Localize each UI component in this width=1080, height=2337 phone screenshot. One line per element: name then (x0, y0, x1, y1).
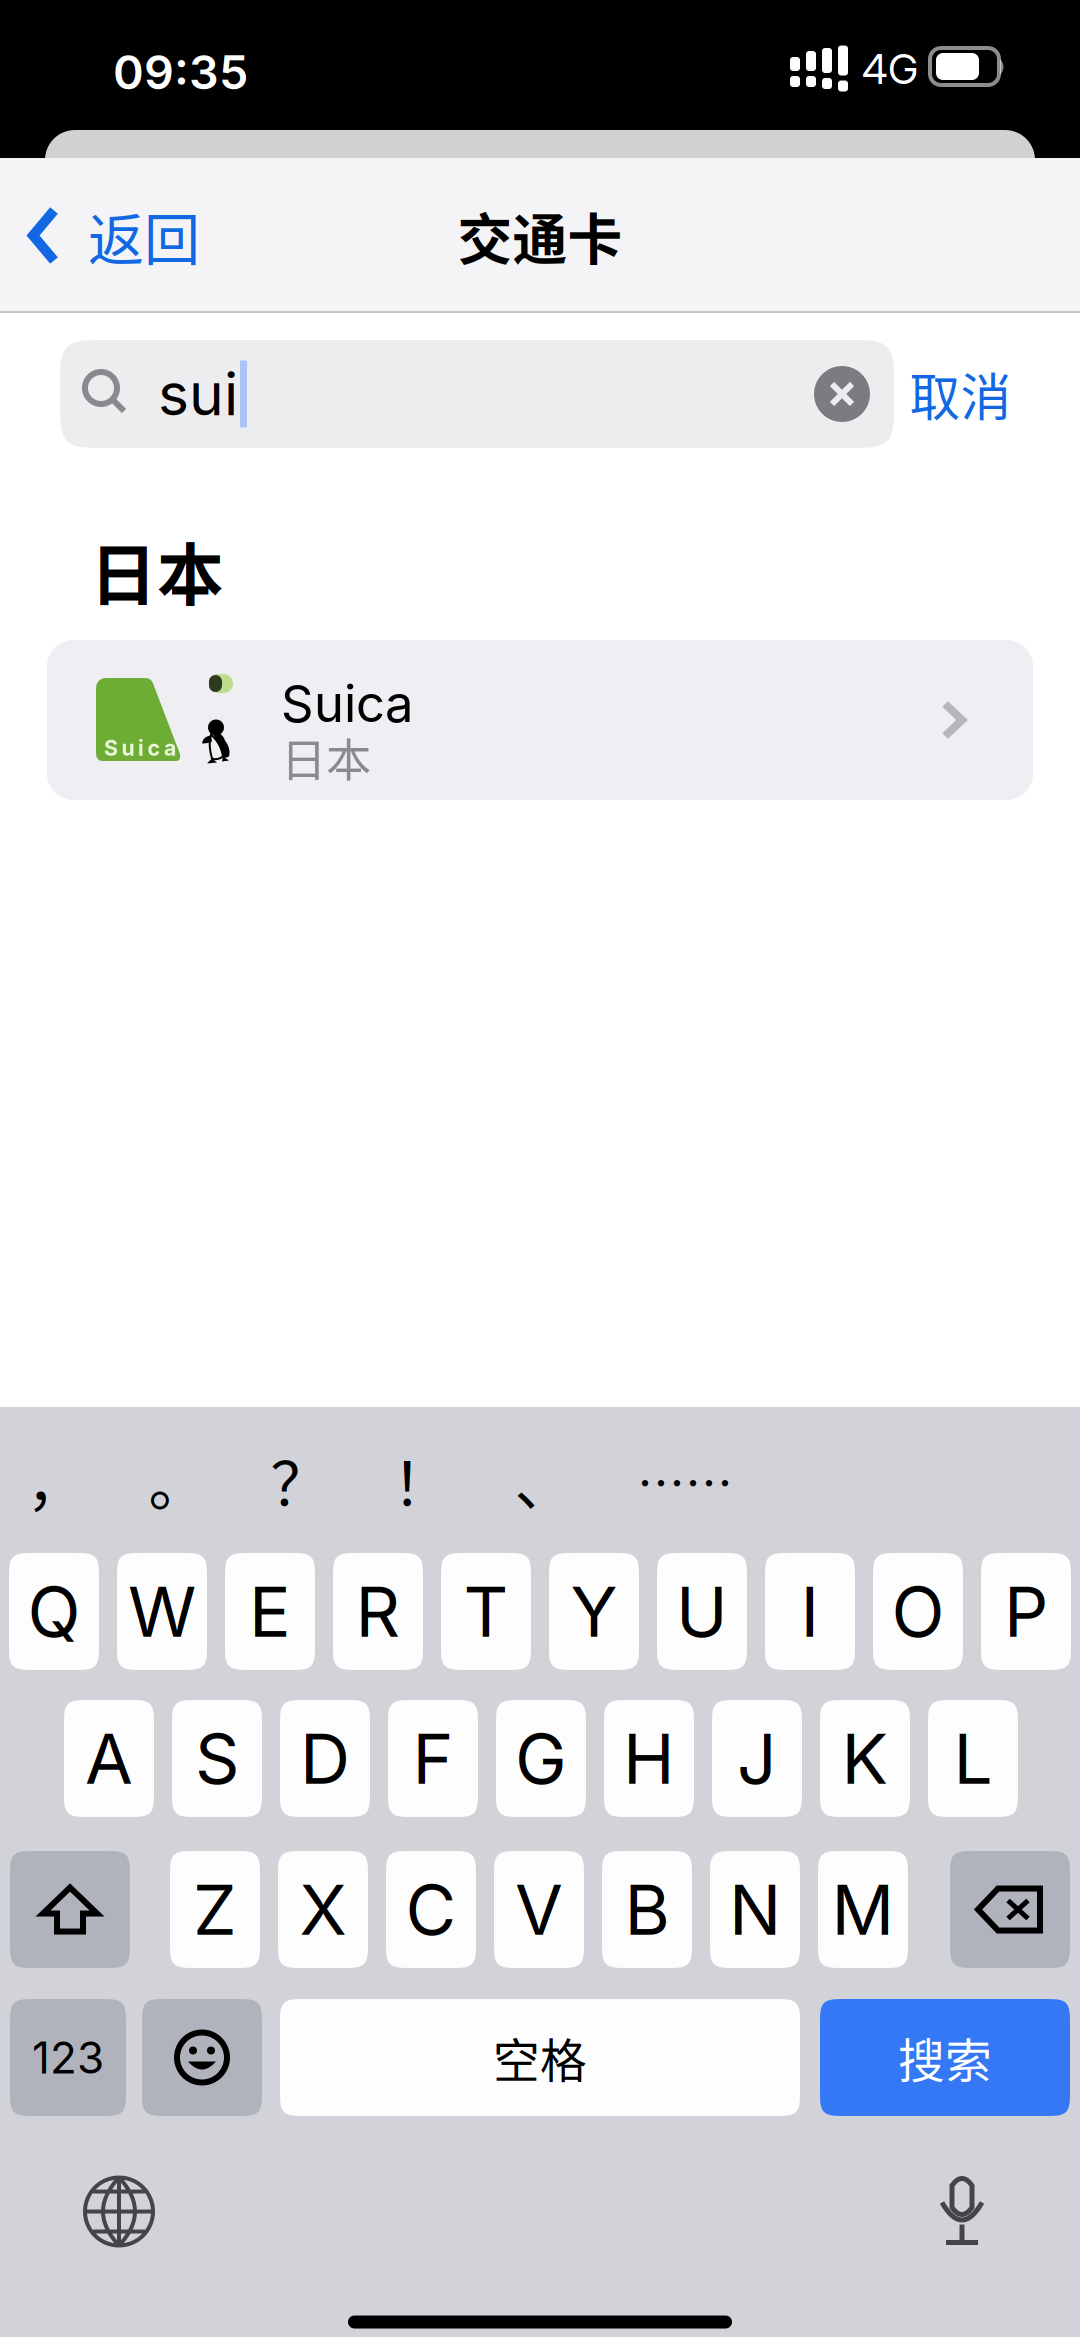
button[interactable]: G (496, 1700, 586, 1817)
staticText: H (623, 1717, 675, 1800)
button[interactable]: 、 (483, 1407, 605, 1553)
button[interactable]: …… (605, 1407, 765, 1553)
button[interactable]: 取消 (879, 340, 1042, 448)
staticText: …… (637, 1445, 733, 1515)
staticText: 取消 (909, 357, 1011, 431)
button[interactable]: X (278, 1851, 368, 1968)
staticText: X (299, 1868, 346, 1951)
button[interactable]: N (710, 1851, 800, 1968)
staticText: 。 (148, 1437, 207, 1522)
button[interactable]: D (280, 1700, 370, 1817)
button[interactable]: Next keyboard (82, 2174, 156, 2248)
button[interactable]: 。 (117, 1407, 239, 1553)
staticText: 123 (32, 2031, 104, 2084)
staticText: R (355, 1570, 400, 1653)
button[interactable]: O (873, 1553, 963, 1670)
button[interactable]: C (386, 1851, 476, 1968)
staticText: 日本 (90, 522, 224, 619)
button[interactable]: Shift (10, 1851, 130, 1968)
staticText: F (412, 1717, 453, 1800)
button[interactable]: S (172, 1700, 262, 1817)
staticText: 搜索 (898, 2024, 992, 2091)
staticText: V (515, 1868, 563, 1951)
button[interactable]: Z (170, 1851, 260, 1968)
button[interactable]: Delete (950, 1851, 1070, 1968)
button[interactable]: T (441, 1553, 531, 1670)
staticText: J (737, 1717, 777, 1800)
button[interactable]: E (225, 1553, 315, 1670)
button[interactable]: 空格 (280, 1999, 800, 2116)
button[interactable]: B (602, 1851, 692, 1968)
staticText: U (676, 1570, 728, 1653)
button[interactable]: 返回 (0, 158, 224, 313)
staticText: Y (570, 1570, 617, 1653)
staticText: A (85, 1717, 133, 1800)
staticText: O (891, 1570, 944, 1653)
button[interactable]: R (333, 1553, 423, 1670)
staticText: K (841, 1717, 888, 1800)
staticText: ？ (270, 1437, 329, 1522)
button[interactable]: U (657, 1553, 747, 1670)
staticText: C (405, 1868, 456, 1951)
button[interactable]: H (604, 1700, 694, 1817)
staticText: ！ (392, 1437, 451, 1522)
staticText: I (800, 1570, 819, 1653)
staticText: E (249, 1570, 291, 1653)
button[interactable]: I (765, 1553, 855, 1670)
button[interactable]: M (818, 1851, 908, 1968)
button[interactable]: ？ (239, 1407, 361, 1553)
staticText: sui (158, 358, 238, 429)
staticText: 日本 (281, 724, 371, 790)
staticText: W (128, 1570, 196, 1653)
staticText: 09:35 (113, 44, 248, 100)
button[interactable]: Suica (47, 640, 1033, 800)
staticText: P (1004, 1570, 1048, 1653)
staticText: M (831, 1868, 894, 1951)
staticText: 返回 (88, 195, 200, 276)
button[interactable]: K (820, 1700, 910, 1817)
staticText: S (195, 1717, 239, 1800)
staticText: 、 (514, 1437, 573, 1522)
button[interactable]: ， (0, 1407, 117, 1553)
button[interactable]: Y (549, 1553, 639, 1670)
button[interactable]: J (712, 1700, 802, 1817)
staticText: 空格 (493, 2024, 587, 2091)
button[interactable]: 123 (10, 1999, 126, 2116)
button[interactable]: 搜索 (820, 1999, 1070, 2116)
staticText: B (624, 1868, 669, 1951)
button[interactable]: Dictation (931, 2169, 993, 2253)
button[interactable]: A (64, 1700, 154, 1817)
staticText: T (463, 1570, 508, 1653)
staticText: Q (27, 1570, 80, 1653)
staticText: 4G (862, 44, 918, 94)
staticText: 交通卡 (457, 196, 622, 275)
staticText: L (953, 1717, 992, 1800)
staticText: D (300, 1717, 350, 1800)
button[interactable]: V (494, 1851, 584, 1968)
staticText: N (729, 1868, 781, 1951)
staticText: ， (26, 1437, 85, 1522)
button[interactable]: P (981, 1553, 1071, 1670)
button[interactable]: W (117, 1553, 207, 1670)
button[interactable]: ！ (361, 1407, 483, 1553)
button[interactable]: Q (9, 1553, 99, 1670)
button[interactable]: F (388, 1700, 478, 1817)
button[interactable]: Emoji (142, 1999, 262, 2116)
staticText: Suica (104, 735, 176, 761)
button[interactable]: L (928, 1700, 1018, 1817)
staticText: G (515, 1717, 567, 1800)
staticText: Z (193, 1868, 237, 1951)
staticText: Suica (281, 673, 413, 734)
